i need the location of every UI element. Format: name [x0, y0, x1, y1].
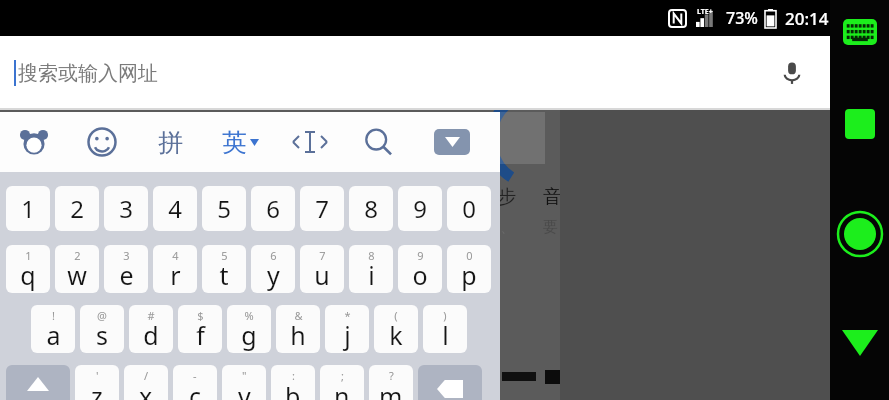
staticText: 7: [315, 192, 329, 225]
button[interactable]: 9: [398, 186, 442, 231]
staticText: z: [91, 379, 103, 400]
staticText: 7: [319, 248, 326, 263]
button[interactable]: 3: [104, 186, 148, 231]
button[interactable]: ': [75, 365, 119, 400]
button[interactable]: 5: [202, 186, 246, 231]
staticText: r: [170, 258, 181, 292]
button[interactable]: Home: [834, 208, 886, 260]
staticText: 英: [222, 127, 247, 158]
button[interactable]: &: [276, 305, 320, 353]
staticText: c: [189, 379, 202, 400]
staticText: (: [394, 308, 398, 323]
button[interactable]: 6: [251, 186, 295, 231]
button[interactable]: 7: [300, 186, 344, 231]
button[interactable]: (: [374, 305, 418, 353]
staticText: 1: [25, 248, 32, 263]
button[interactable]: Hide keyboard: [412, 112, 492, 172]
staticText: ': [96, 368, 99, 383]
button[interactable]: 8: [349, 186, 393, 231]
staticText: 0: [462, 192, 476, 225]
staticText: 6: [270, 248, 277, 263]
button[interactable]: Recent apps: [838, 102, 882, 146]
button[interactable]: 3: [104, 245, 148, 293]
button[interactable]: Voice search: [772, 53, 812, 93]
staticText: s: [96, 318, 108, 352]
staticText: a: [46, 318, 61, 352]
staticText: :: [292, 368, 295, 383]
staticText: #: [147, 308, 155, 323]
button[interactable]: @: [80, 305, 124, 353]
button[interactable]: $: [178, 305, 222, 353]
staticText: $: [197, 308, 204, 323]
staticText: ;: [341, 368, 344, 383]
staticText: 3: [123, 248, 130, 263]
staticText: /: [144, 368, 149, 383]
staticText: 4: [172, 248, 179, 263]
button[interactable]: /: [124, 365, 168, 400]
button[interactable]: Search: [344, 112, 412, 172]
staticText: f: [196, 318, 205, 352]
button[interactable]: 拼: [136, 112, 204, 172]
button[interactable]: 0: [447, 245, 491, 293]
staticText: b: [285, 379, 301, 400]
button[interactable]: !: [31, 305, 75, 353]
staticText: *: [344, 308, 351, 323]
button[interactable]: 英: [204, 112, 276, 172]
staticText: p: [461, 258, 477, 292]
staticText: x: [139, 379, 153, 400]
button[interactable]: 搜索或输入网址: [0, 36, 830, 110]
staticText: 20:14: [785, 7, 829, 30]
button[interactable]: 8: [349, 245, 393, 293]
staticText: q: [20, 258, 36, 292]
staticText: 要: [543, 218, 558, 237]
staticText: h: [290, 318, 306, 352]
button[interactable]: 2: [55, 186, 99, 231]
button[interactable]: 7: [300, 245, 344, 293]
button[interactable]: Keyboard: [838, 10, 882, 54]
button[interactable]: Emoji: [68, 112, 136, 172]
button[interactable]: ): [423, 305, 467, 353]
button[interactable]: #: [129, 305, 173, 353]
staticText: 9: [417, 248, 424, 263]
button[interactable]: ;: [320, 365, 364, 400]
staticText: LTE+: [697, 7, 713, 17]
staticText: %: [244, 308, 254, 323]
button[interactable]: *: [325, 305, 369, 353]
button[interactable]: 6: [251, 245, 295, 293]
button[interactable]: 0: [447, 186, 491, 231]
button[interactable]: 1: [6, 245, 50, 293]
staticText: 2: [70, 192, 84, 225]
button[interactable]: ": [222, 365, 266, 400]
staticText: &: [294, 308, 303, 323]
button[interactable]: 5: [202, 245, 246, 293]
button[interactable]: -: [173, 365, 217, 400]
button[interactable]: 2: [55, 245, 99, 293]
button[interactable]: ?: [369, 365, 413, 400]
button[interactable]: Backspace: [418, 365, 482, 400]
button[interactable]: 4: [153, 245, 197, 293]
button[interactable]: Baidu menu: [0, 112, 68, 172]
button[interactable]: %: [227, 305, 271, 353]
staticText: 73%: [726, 7, 758, 29]
button[interactable]: Back: [837, 320, 883, 366]
button[interactable]: 4: [153, 186, 197, 231]
button[interactable]: 9: [398, 245, 442, 293]
staticText: @: [97, 308, 107, 323]
staticText: y: [267, 258, 280, 292]
staticText: ): [443, 308, 447, 323]
staticText: 2: [74, 248, 81, 263]
staticText: i: [368, 258, 375, 292]
staticText: u: [314, 258, 330, 292]
button[interactable]: 1: [6, 186, 50, 231]
staticText: l: [442, 318, 449, 352]
staticText: 9: [413, 192, 427, 225]
staticText: n: [334, 379, 350, 400]
staticText: e: [119, 258, 134, 292]
staticText: 1: [21, 192, 35, 225]
button[interactable]: :: [271, 365, 315, 400]
button[interactable]: Move cursor: [276, 112, 344, 172]
button[interactable]: Shift: [6, 365, 70, 400]
staticText: g: [241, 318, 257, 352]
staticText: 0: [466, 248, 473, 263]
